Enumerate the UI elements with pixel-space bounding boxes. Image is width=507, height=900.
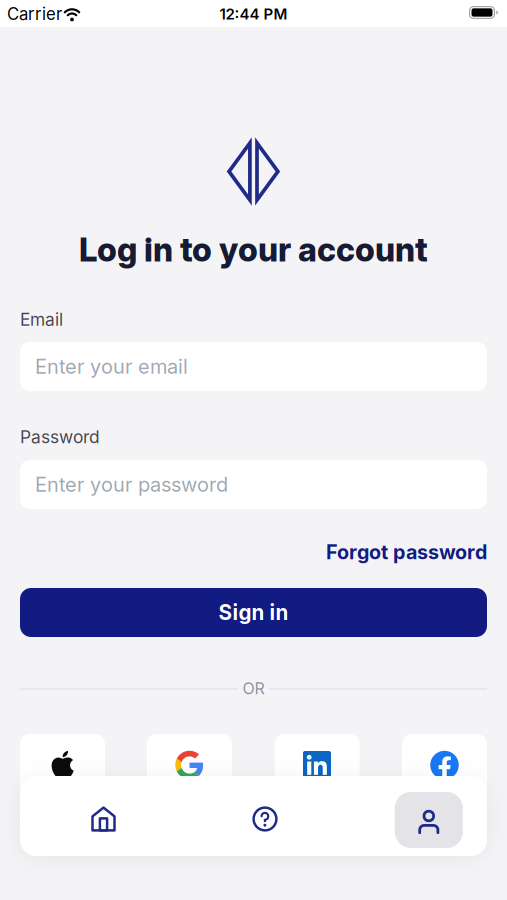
- staticText: OR: [242, 679, 264, 698]
- button[interactable]: Enter your password: [20, 460, 487, 509]
- button[interactable]: Help: [195, 787, 335, 851]
- staticText: Enter your password: [35, 472, 228, 497]
- button[interactable]: Sign in with LinkedIn: [274, 734, 359, 796]
- staticText: 12:44 PM: [219, 5, 287, 23]
- staticText: Enter your email: [35, 354, 188, 379]
- staticText: Password: [20, 426, 100, 447]
- button[interactable]: Sign in: [20, 588, 487, 637]
- staticText: Carrier: [7, 4, 62, 24]
- button[interactable]: Home: [33, 787, 173, 851]
- button[interactable]: Sign in with Facebook: [402, 734, 487, 796]
- staticText: Log in to your account: [79, 230, 428, 269]
- staticText: Sign in: [218, 600, 288, 625]
- button[interactable]: Forgot password: [326, 540, 487, 564]
- staticText: Email: [20, 309, 63, 330]
- button[interactable]: Enter your email: [20, 342, 487, 391]
- button[interactable]: Sign in with Apple: [20, 734, 105, 796]
- staticText: Forgot password: [326, 540, 487, 564]
- button[interactable]: Sign in with Google: [147, 734, 232, 796]
- button[interactable]: Account: [359, 788, 499, 852]
